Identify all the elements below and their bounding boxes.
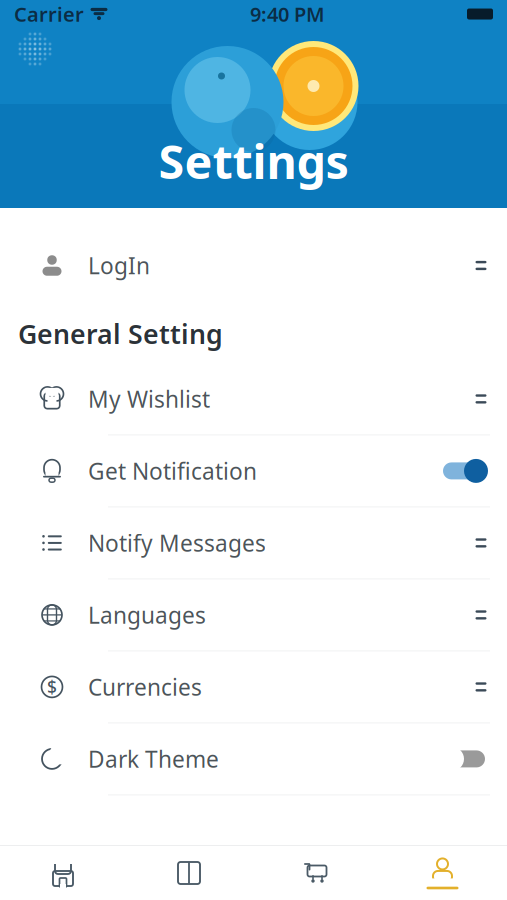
button[interactable]: Dark Theme	[0, 723, 507, 795]
button[interactable]: Get Notification	[0, 435, 507, 507]
button[interactable]: Notify Messages	[0, 507, 507, 579]
staticText: Dark Theme	[88, 744, 219, 774]
staticText: Carrier	[14, 1, 84, 27]
button[interactable]: Cart	[252, 846, 378, 900]
staticText: $	[47, 675, 57, 698]
button[interactable]: LogIn	[0, 230, 507, 302]
staticText: Settings	[158, 130, 348, 192]
staticText: Currencies	[88, 672, 202, 702]
staticText: LogIn	[88, 250, 150, 280]
staticText: 9:40 PM	[250, 1, 325, 27]
button[interactable]: Home	[0, 846, 126, 900]
button[interactable]: My Wishlist	[0, 363, 507, 435]
staticText: Languages	[88, 600, 206, 630]
button[interactable]: $	[0, 651, 507, 723]
staticText: Get Notification	[88, 456, 257, 486]
button[interactable]: Catalog	[126, 846, 252, 900]
staticText: My Wishlist	[88, 384, 210, 414]
staticText: Notify Messages	[88, 528, 266, 558]
button[interactable]: Account	[378, 846, 507, 900]
staticText: General Setting	[18, 316, 223, 351]
button[interactable]: Languages	[0, 579, 507, 651]
button[interactable]: Menu	[18, 32, 52, 66]
